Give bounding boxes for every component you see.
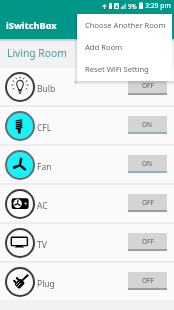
button[interactable]: ON [128, 155, 167, 173]
staticText: AC [37, 200, 48, 212]
button[interactable]: Choose Another Room [77, 14, 172, 36]
staticText: ON [142, 159, 153, 168]
button[interactable]: ON [128, 116, 167, 134]
button[interactable]: Reset WiFi Setting [77, 58, 172, 80]
staticText: 9% [128, 2, 137, 10]
button[interactable]: OFF [128, 194, 167, 212]
staticText: Add Room [85, 42, 123, 52]
button[interactable]: OFF [128, 272, 167, 290]
staticText: OFF [142, 81, 154, 90]
staticText: Reset WiFi Setting [85, 64, 149, 74]
button[interactable]: Bulb [0, 68, 174, 105]
staticText: OFF [142, 198, 154, 207]
staticText: 3:29 pm [145, 1, 171, 10]
staticText: OFF [142, 237, 154, 246]
staticText: TV [37, 239, 47, 251]
button[interactable]: CFL [0, 107, 174, 144]
staticText: CFL [37, 122, 52, 134]
staticText: OFF [142, 276, 154, 285]
staticText: Plug [37, 278, 55, 290]
staticText: Fan [37, 161, 52, 173]
staticText: Living Room [7, 46, 67, 60]
staticText: Choose Another Room [85, 20, 166, 30]
button[interactable]: OFF [128, 77, 167, 95]
staticText: iSwitchBox [6, 19, 57, 32]
staticText: ON [142, 120, 153, 129]
button[interactable]: Plug [0, 263, 174, 300]
staticText: Bulb [37, 83, 56, 95]
button[interactable]: TV [0, 224, 174, 261]
button[interactable]: AC [0, 185, 174, 222]
button[interactable]: Add Room [77, 36, 172, 58]
button[interactable]: OFF [128, 233, 167, 251]
button[interactable]: Fan [0, 146, 174, 183]
